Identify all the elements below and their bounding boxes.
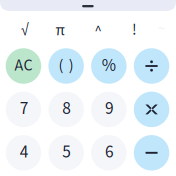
button[interactable]: Multiply — [134, 92, 169, 127]
staticText: ) — [69, 54, 74, 77]
staticText: √ — [20, 19, 28, 40]
staticText: 4 — [20, 140, 29, 164]
button[interactable]: Parentheses — [48, 48, 84, 84]
button[interactable]: Divide — [134, 48, 169, 84]
button[interactable]: Minus — [134, 135, 169, 171]
staticText: 5 — [62, 140, 71, 164]
button[interactable]: % — [91, 48, 127, 84]
staticText: % — [102, 53, 116, 78]
button[interactable]: 9 — [91, 92, 127, 127]
button[interactable]: AC — [6, 48, 41, 84]
button[interactable]: 5 — [48, 135, 84, 171]
staticText: 9 — [105, 96, 114, 121]
button[interactable]: √ — [7, 14, 42, 42]
staticText: ! — [132, 18, 137, 41]
staticText: 7 — [20, 96, 29, 121]
button[interactable]: ! — [117, 14, 152, 42]
button[interactable]: 7 — [6, 92, 41, 127]
button[interactable]: π — [42, 14, 78, 42]
button[interactable]: 4 — [6, 135, 41, 171]
button[interactable]: 6 — [91, 135, 127, 171]
staticText: AC — [14, 54, 32, 77]
button[interactable]: ^ — [80, 14, 116, 42]
staticText: 8 — [62, 96, 71, 121]
staticText: π — [55, 19, 64, 42]
button[interactable]: 8 — [48, 92, 84, 127]
staticText: ( — [59, 54, 64, 77]
staticText: 6 — [105, 140, 114, 164]
staticText: ^ — [94, 20, 101, 41]
